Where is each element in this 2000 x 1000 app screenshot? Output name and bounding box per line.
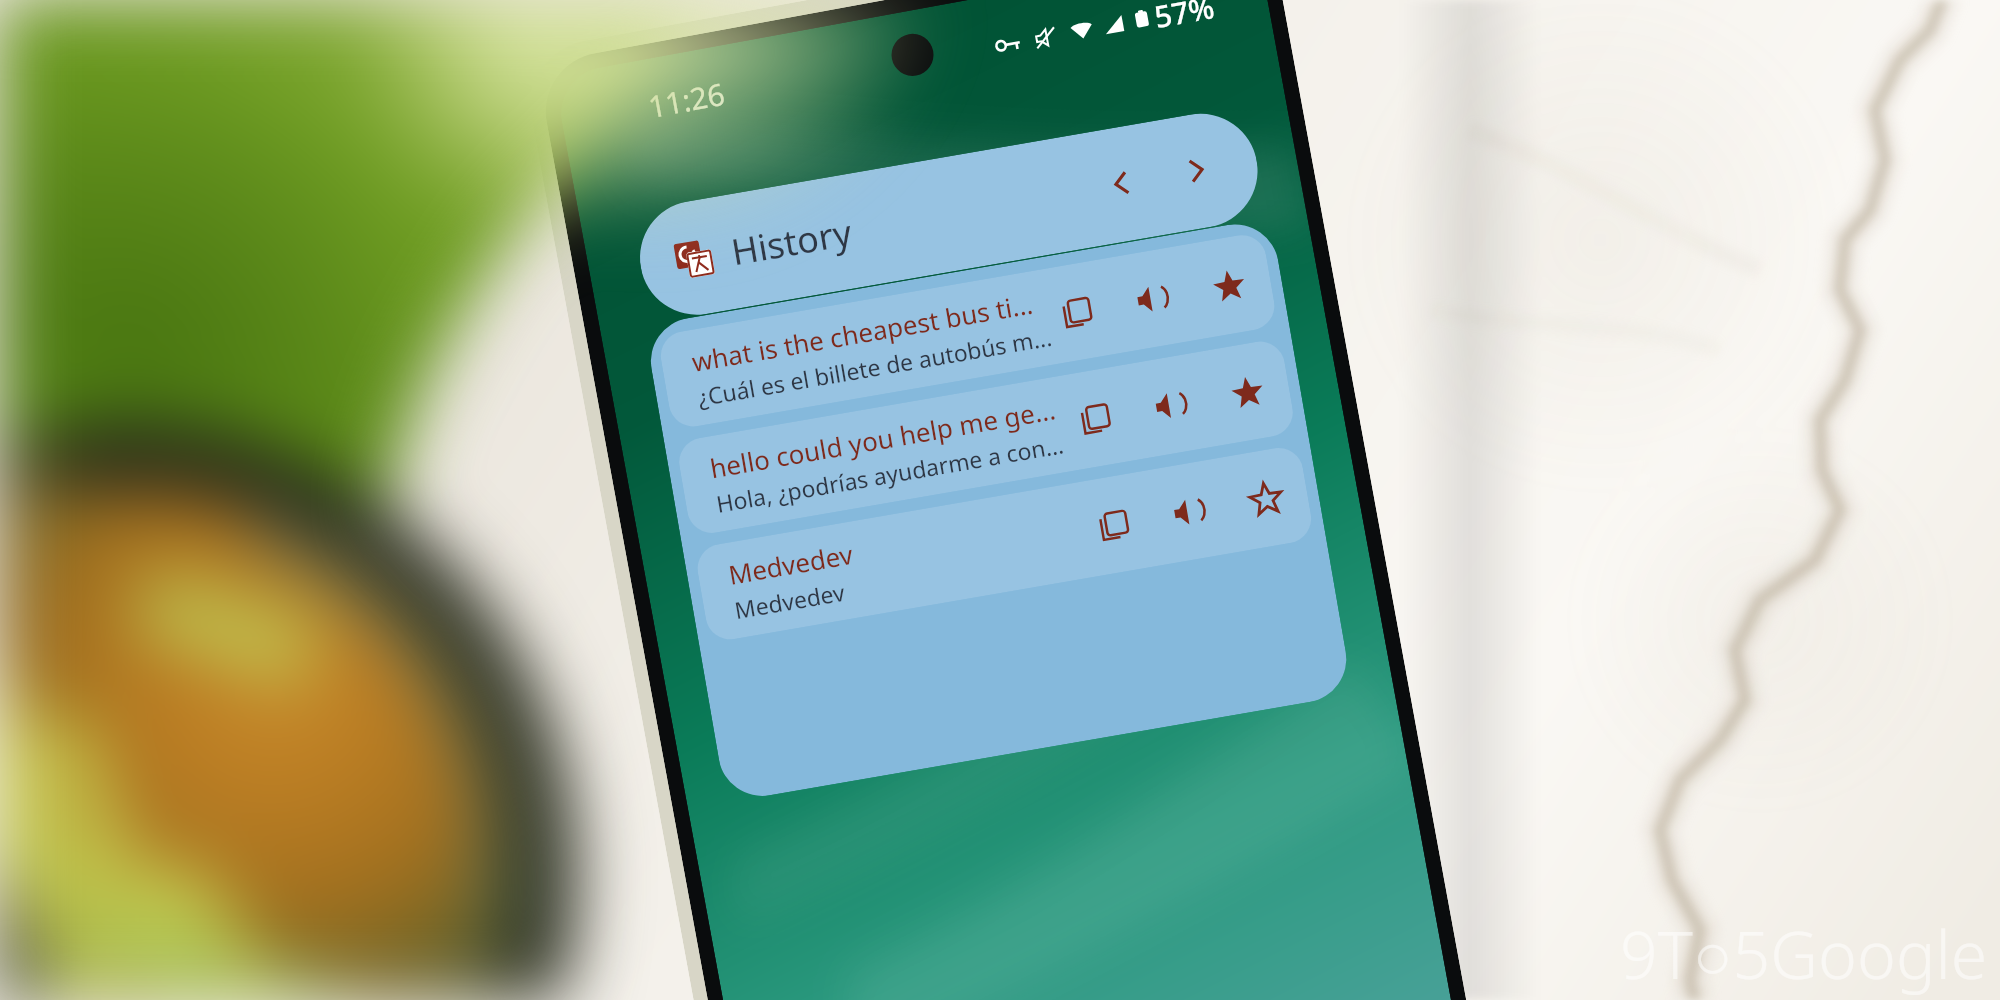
button[interactable]: History xyxy=(630,98,1268,330)
staticText: ¿Cuál es el billete de autobús m... xyxy=(695,317,1055,416)
button[interactable]: hello could you help me ge... xyxy=(674,331,1298,543)
button[interactable]: Copy xyxy=(1069,392,1121,444)
button[interactable]: what is the cheapest bus ti... xyxy=(656,225,1279,437)
button[interactable]: Previous xyxy=(1084,146,1159,221)
staticText: 11:26 xyxy=(645,73,728,127)
staticText: Hola, ¿podrías ayudarme a con... xyxy=(713,425,1066,522)
button[interactable]: Listen xyxy=(1145,379,1197,431)
staticText: Medvedev xyxy=(732,575,847,626)
button[interactable]: Listen xyxy=(1127,273,1179,325)
staticText: History xyxy=(727,206,856,278)
button[interactable]: Next xyxy=(1159,133,1234,208)
button[interactable]: Favourite xyxy=(1221,366,1273,418)
staticText: hello could you help me ge... xyxy=(707,388,1058,489)
button[interactable]: Listen xyxy=(1164,486,1216,538)
button[interactable]: Copy xyxy=(1051,286,1103,338)
button[interactable]: Favourite xyxy=(1203,260,1255,312)
staticText: 57% xyxy=(1151,0,1217,37)
staticText: 9T○5Google xyxy=(1620,908,1988,998)
button[interactable]: Medvedev xyxy=(693,438,1316,650)
button[interactable]: Copy xyxy=(1088,499,1140,551)
staticText: what is the cheapest bus ti... xyxy=(688,282,1036,382)
staticText: Medvedev xyxy=(725,534,856,593)
button[interactable]: Favourite xyxy=(1240,473,1291,524)
